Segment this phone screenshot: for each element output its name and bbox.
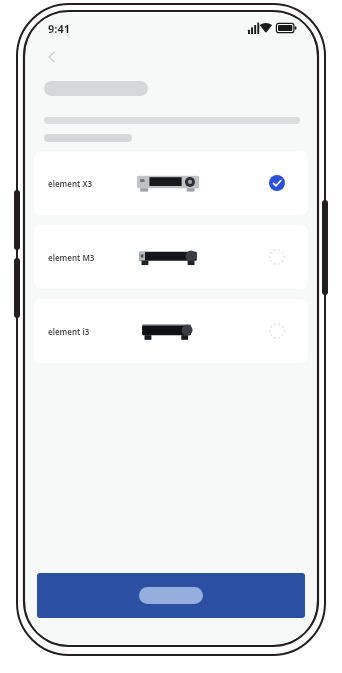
button[interactable]: Select element i3 [266,320,288,342]
button[interactable]: Select element M3 [266,246,288,268]
staticText: element i3 [48,326,120,337]
button[interactable] [37,573,305,618]
button[interactable]: element X3 [34,151,308,215]
button[interactable]: element M3 [34,225,308,289]
staticText: element X3 [48,178,120,189]
staticText: element M3 [48,252,120,263]
button[interactable]: element i3 [34,299,308,363]
button[interactable]: Selected element X3 [266,172,288,194]
staticText: 9:41 [48,21,70,36]
button[interactable]: Back [40,45,64,69]
